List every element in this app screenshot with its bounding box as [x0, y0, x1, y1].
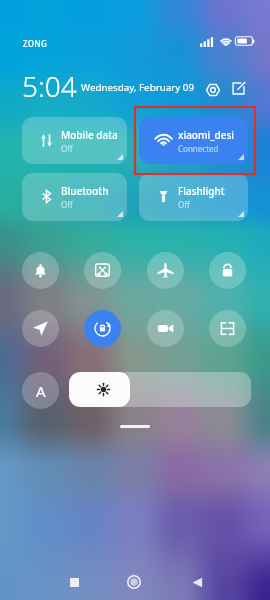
button[interactable]: Airplane mode [147, 252, 184, 289]
button[interactable]: Lock [209, 252, 246, 289]
button[interactable]: Scanner [209, 310, 246, 347]
staticText: A [36, 381, 46, 401]
button[interactable]: xiaomi_desi [139, 117, 248, 164]
staticText: Mobile data [61, 128, 118, 142]
button[interactable]: Back [182, 567, 212, 597]
staticText: Off [178, 199, 190, 210]
button[interactable]: Screenshot [84, 252, 121, 289]
button[interactable]: Silent [22, 252, 59, 289]
staticText: xiaomi_desi [178, 128, 234, 142]
staticText: ZONG [23, 38, 48, 49]
staticText: Wednesday, February 09 [81, 81, 195, 94]
button[interactable]: Recents [59, 567, 89, 597]
button[interactable]: Brightness [69, 372, 251, 407]
button[interactable]: Auto brightness [22, 372, 59, 409]
button[interactable]: Settings [202, 79, 223, 100]
staticText: Bluetooth [61, 184, 109, 198]
button[interactable]: Mobile data [22, 117, 127, 164]
staticText: Flashlight [178, 184, 225, 198]
button[interactable]: Screen recorder [147, 310, 184, 347]
button[interactable]: Edit [228, 78, 249, 99]
staticText: Off [61, 199, 73, 210]
staticText: Connected [178, 143, 219, 154]
staticText: 5:04 [22, 67, 77, 105]
button[interactable]: Auto rotate [84, 310, 121, 347]
button[interactable]: Home [119, 567, 149, 597]
staticText: Off [61, 143, 73, 154]
button[interactable]: Flashlight [139, 173, 248, 221]
button[interactable]: Location [22, 310, 59, 347]
button[interactable]: Bluetooth [22, 173, 127, 221]
